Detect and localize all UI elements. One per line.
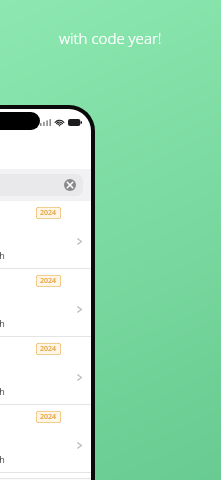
button[interactable]: 2024 [0,269,91,336]
staticText: 2024 [40,276,57,286]
button[interactable]: 2024 [0,337,91,404]
staticText: 2024 [40,344,57,354]
staticText: 2024 [40,208,57,218]
staticText: 2024 [40,412,57,422]
staticText: /or fracture with [0,385,5,397]
staticText: with code year! [59,28,162,48]
button[interactable]: 2024 [0,473,91,480]
button[interactable]: 2024 [0,405,91,472]
staticText: /or fracture with [0,249,5,261]
button[interactable]: Clear search [64,179,76,191]
button[interactable]: Clear search [0,174,83,196]
staticText: /or fracture with [0,317,5,329]
staticText: /or fracture with [0,453,5,465]
button[interactable]: 2024 [0,201,91,268]
